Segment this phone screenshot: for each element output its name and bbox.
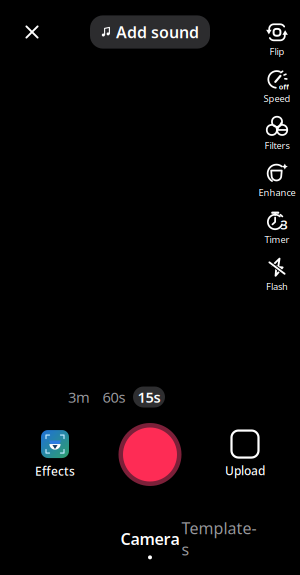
button[interactable]: Templates [181,517,257,570]
button[interactable]: 60s [98,386,130,407]
button[interactable]: Camera [119,528,181,559]
staticText: 3m [68,387,90,407]
staticText: off [279,81,288,90]
button[interactable]: Flip [255,24,299,56]
staticText: Templates [181,517,256,560]
staticText: Filters [264,139,289,152]
button[interactable]: Filters [255,118,299,150]
button[interactable]: 3m [63,386,95,407]
staticText: Flip [269,45,284,58]
button[interactable]: Record [118,422,182,486]
button[interactable]: Add sound [90,15,210,49]
button[interactable]: Enhance [255,165,299,197]
button[interactable]: Upload [214,431,276,477]
staticText: Flash [266,280,288,293]
staticText: 15s [137,387,160,407]
staticText: 60s [102,387,125,407]
staticText: Timer [264,233,289,246]
staticText: Upload [225,462,265,478]
staticText: Speed [263,92,290,105]
button[interactable]: Close [14,14,50,50]
button[interactable]: Flash [255,259,299,291]
staticText: Add sound [116,21,199,43]
button[interactable]: 15s [133,386,165,407]
staticText: Effects [35,463,75,479]
button[interactable]: Effects [24,431,86,477]
button[interactable]: 3 [255,212,299,244]
staticText: Enhance [258,186,295,199]
staticText: 3 [280,216,287,232]
button[interactable]: off [255,71,299,103]
staticText: Camera [120,528,179,549]
